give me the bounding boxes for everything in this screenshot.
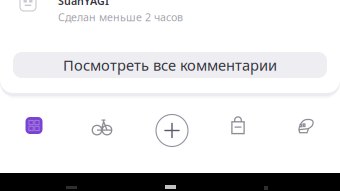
- button[interactable]: Rides: [68, 99, 136, 154]
- staticText: SuanYAGI: [58, 0, 109, 8]
- staticText: Сделан меньше 2 часов: [58, 10, 183, 24]
- button[interactable]: Shop: [204, 99, 272, 154]
- staticText: Посмотреть все комментарии: [63, 55, 277, 75]
- button[interactable]: Feed: [0, 99, 68, 154]
- button[interactable]: Посмотреть все комментарии: [13, 52, 327, 78]
- button[interactable]: Profile: [272, 99, 340, 154]
- button[interactable]: Create: [136, 99, 204, 154]
